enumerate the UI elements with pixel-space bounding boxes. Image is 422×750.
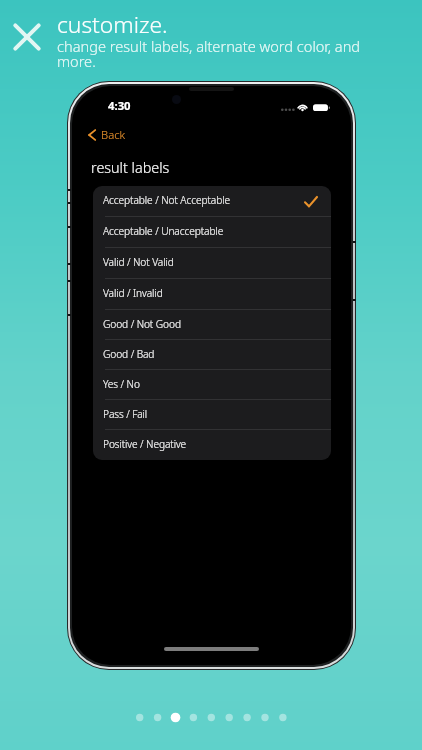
staticText: Valid / Invalid [103,286,163,300]
button[interactable]: Pass / Fail [93,400,331,430]
staticText: Acceptable / Unacceptable [103,224,224,238]
staticText: Pass / Fail [103,407,148,421]
button[interactable]: Close [13,23,41,51]
staticText: more. [57,51,96,71]
staticText: Back [101,127,126,142]
button[interactable]: Good / Not Good [93,310,331,340]
staticText: Positive / Negative [103,437,187,451]
button[interactable]: Yes / No [93,370,331,400]
button[interactable]: Positive / Negative [93,430,331,460]
button[interactable]: Valid / Invalid [93,279,331,310]
staticText: 4:30 [108,98,131,113]
staticText: Yes / No [103,377,140,391]
button[interactable]: Back [85,124,129,145]
staticText: Good / Bad [103,347,155,361]
button[interactable]: Acceptable / Unacceptable [93,217,331,248]
staticText: change result labels, alternate word col… [57,36,361,56]
staticText: customize. [57,9,168,40]
button[interactable]: Good / Bad [93,340,331,370]
staticText: result labels [91,158,170,178]
button[interactable]: Valid / Not Valid [93,248,331,279]
button[interactable]: Acceptable / Not Acceptable [93,186,331,217]
staticText: Valid / Not Valid [103,255,174,269]
staticText: Acceptable / Not Acceptable [103,193,230,207]
staticText: Good / Not Good [103,317,181,331]
